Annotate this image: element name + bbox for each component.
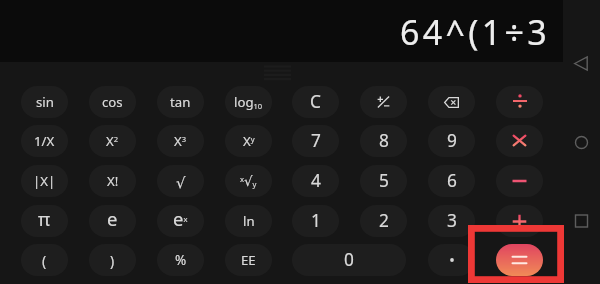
staticText: e xyxy=(107,206,118,231)
button[interactable]: X3 xyxy=(157,125,204,157)
button[interactable]: ) xyxy=(89,244,136,276)
button[interactable]: ln xyxy=(225,205,272,237)
staticText: 64^(1÷3 xyxy=(400,9,550,55)
button[interactable]: Minus xyxy=(496,165,543,197)
staticText: cos xyxy=(102,93,123,111)
button[interactable]: sin xyxy=(21,86,68,118)
button[interactable]: π xyxy=(21,205,68,237)
staticText: EE xyxy=(241,251,256,269)
button[interactable]: 5 xyxy=(360,165,407,197)
button[interactable]: 9 xyxy=(428,125,475,157)
staticText: π xyxy=(38,206,51,231)
button[interactable]: Equals xyxy=(496,244,543,276)
button[interactable]: Plus minus xyxy=(360,86,407,118)
button[interactable]: log10 xyxy=(225,86,272,118)
button[interactable]: Plus xyxy=(496,205,543,237)
staticText: 1 xyxy=(311,209,321,233)
button[interactable]: % xyxy=(157,244,204,276)
button[interactable]: C xyxy=(292,86,339,118)
staticText: 4 xyxy=(311,169,321,193)
staticText: 8 xyxy=(379,129,389,153)
staticText: ln xyxy=(243,212,255,230)
button[interactable]: X! xyxy=(89,165,136,197)
staticText: ) xyxy=(110,251,115,270)
button[interactable]: x√y xyxy=(225,165,272,197)
button[interactable]: 6 xyxy=(428,165,475,197)
button[interactable]: cos xyxy=(89,86,136,118)
button[interactable]: Recents xyxy=(569,208,595,234)
staticText: 6 xyxy=(447,169,457,193)
button[interactable]: tan xyxy=(157,86,204,118)
button[interactable]: EE xyxy=(225,244,272,276)
button[interactable]: |X| xyxy=(21,165,68,197)
staticText: C xyxy=(310,90,321,114)
button[interactable]: X2 xyxy=(89,125,136,157)
button[interactable]: 0 xyxy=(292,244,406,276)
staticText: 5 xyxy=(379,169,389,193)
staticText: X! xyxy=(107,172,119,190)
staticText: log10 xyxy=(234,93,263,111)
staticText: sin xyxy=(36,93,54,111)
button[interactable]: 2 xyxy=(360,205,407,237)
staticText: X2 xyxy=(106,132,119,150)
button[interactable]: Xy xyxy=(225,125,272,157)
button[interactable]: Multiply xyxy=(496,125,543,157)
staticText: % xyxy=(175,251,187,269)
button[interactable]: 7 xyxy=(292,125,339,157)
button[interactable]: 3 xyxy=(428,205,475,237)
staticText: 1/X xyxy=(34,132,55,150)
button[interactable]: Back xyxy=(569,50,595,76)
button[interactable]: 4 xyxy=(292,165,339,197)
button[interactable]: ( xyxy=(21,244,68,276)
staticText: x√y xyxy=(240,173,257,189)
staticText: Xy xyxy=(243,132,255,150)
staticText: √ xyxy=(176,174,186,191)
staticText: 2 xyxy=(379,209,389,233)
button[interactable]: 1 xyxy=(292,205,339,237)
staticText: 3 xyxy=(447,209,457,233)
staticText: ( xyxy=(42,251,47,270)
staticText: ex xyxy=(173,206,188,231)
staticText: 9 xyxy=(447,129,457,153)
button[interactable]: √ xyxy=(157,165,204,197)
staticText: 7 xyxy=(311,129,321,153)
button[interactable]: e xyxy=(89,205,136,237)
staticText: tan xyxy=(170,93,191,111)
staticText: 0 xyxy=(344,248,354,272)
button[interactable]: Backspace xyxy=(428,86,475,118)
button[interactable]: 8 xyxy=(360,125,407,157)
staticText: |X| xyxy=(33,172,56,190)
staticText: X3 xyxy=(174,132,187,150)
button[interactable]: Home xyxy=(569,129,595,155)
button[interactable]: Decimal point xyxy=(428,244,475,276)
button[interactable]: Divide xyxy=(496,86,543,118)
button[interactable]: 1/X xyxy=(21,125,68,157)
button[interactable]: ex xyxy=(157,205,204,237)
